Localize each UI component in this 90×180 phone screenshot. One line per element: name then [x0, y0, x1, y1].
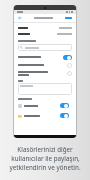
staticText: kullanıcılar ile paylaşın, — [11, 154, 80, 162]
button[interactable] — [63, 55, 72, 60]
button[interactable] — [60, 113, 69, 118]
staticText: yetkilendirin ve yönetin. — [9, 163, 81, 171]
button[interactable] — [18, 54, 72, 60]
button[interactable] — [18, 70, 72, 77]
button[interactable] — [18, 83, 72, 95]
button[interactable] — [18, 102, 72, 109]
button[interactable] — [18, 112, 72, 119]
button[interactable] — [60, 103, 69, 108]
button[interactable]: Geri — [17, 15, 23, 21]
button[interactable] — [67, 71, 72, 76]
button[interactable] — [18, 44, 72, 51]
button[interactable] — [18, 26, 72, 30]
button[interactable] — [67, 63, 72, 68]
staticText: Klasörlerinizi diğer — [17, 145, 73, 153]
button[interactable] — [18, 62, 72, 68]
button[interactable] — [18, 32, 72, 36]
button[interactable] — [64, 16, 73, 20]
